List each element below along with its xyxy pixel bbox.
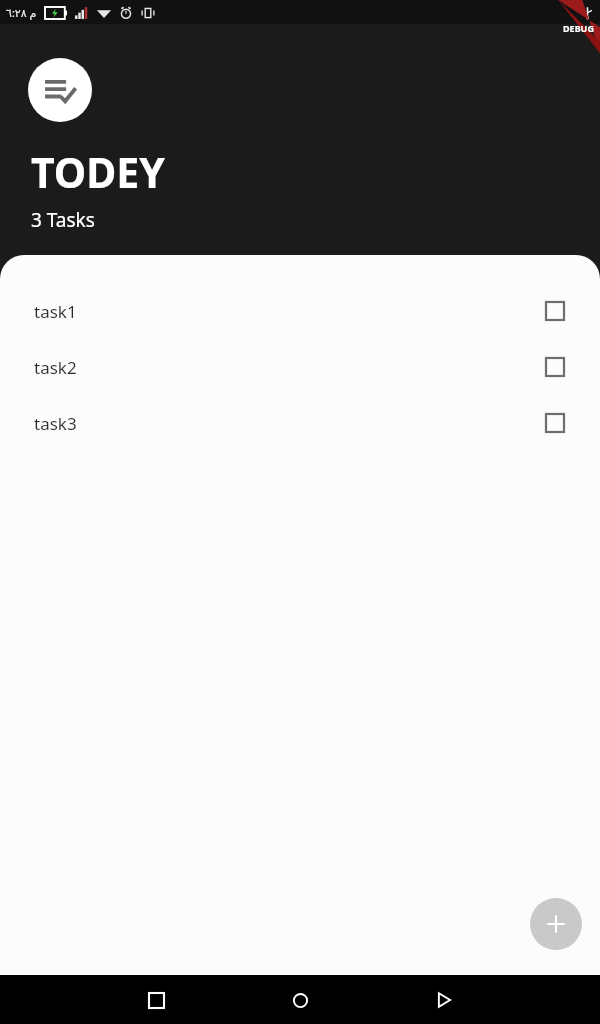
staticText: TODEY [31, 144, 165, 200]
staticText: task2 [34, 356, 77, 379]
button[interactable]: Toggle task1 [542, 298, 568, 324]
button[interactable]: Task list [28, 58, 92, 122]
button[interactable]: Toggle task3 [542, 410, 568, 436]
staticText: DEBUG [563, 22, 594, 34]
button[interactable]: task1 [0, 283, 600, 339]
button[interactable]: Add task [530, 898, 582, 950]
button[interactable]: task2 [0, 339, 600, 395]
button[interactable]: Back [423, 979, 465, 1021]
staticText: 3 Tasks [31, 207, 95, 233]
staticText: م ٦:٢٨ [6, 5, 37, 20]
button[interactable]: task3 [0, 395, 600, 451]
button[interactable]: Home [279, 979, 321, 1021]
button[interactable]: Toggle task2 [542, 354, 568, 380]
button[interactable]: Recents [135, 979, 177, 1021]
staticText: task1 [34, 300, 77, 323]
staticText: task3 [34, 412, 77, 435]
